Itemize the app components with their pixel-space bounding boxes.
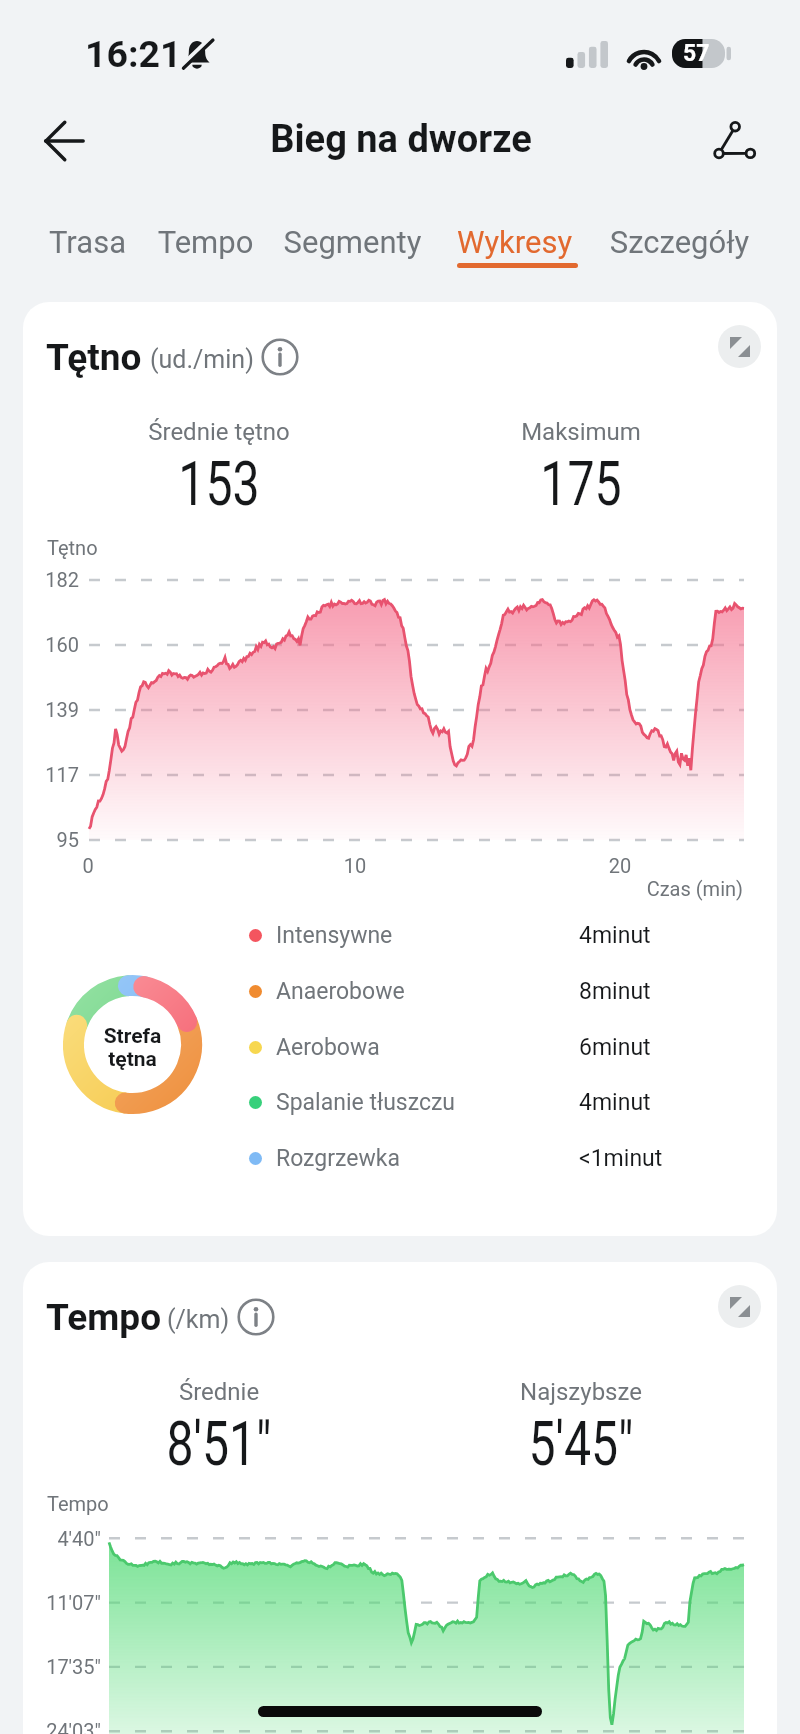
staticText: 16:21 [85,34,293,76]
button[interactable]: Intensywne [233,907,753,963]
staticText: Tempo [148,224,263,260]
staticText: tętna [63,1047,202,1072]
staticText: 11'07" [23,1591,101,1614]
staticText: (/km) [167,1305,407,1334]
button[interactable]: Expand chart [718,1285,761,1328]
staticText: 4'40" [23,1527,101,1550]
staticText: Tętno [47,536,247,559]
button[interactable]: Back [24,101,104,181]
staticText: Czas (min) [483,877,743,900]
button[interactable]: Trasa [38,208,137,280]
button[interactable]: Segmenty [270,208,435,280]
staticText: 10 [315,854,395,877]
button[interactable]: Aerobowa [233,1019,753,1075]
staticText: Segmenty [270,224,435,260]
button[interactable]: Share [681,100,761,180]
staticText: 57 [683,40,710,67]
button[interactable]: Anaerobowe [233,963,753,1019]
staticText: Rozgrzewka [276,1145,636,1172]
staticText: Średnie tętno [23,418,429,446]
staticText: Tętno [46,336,366,379]
staticText: 17'35" [23,1655,101,1678]
staticText: (ud./min) [150,345,390,374]
staticText: 8'51" [53,1408,385,1479]
staticText: 95 [23,828,79,851]
staticText: 8minut [579,978,777,1005]
button[interactable]: Wykresy [445,208,584,280]
staticText: Bieg na dworze [101,117,701,162]
staticText: 24'03" [23,1719,101,1734]
staticText: Tempo [47,1492,247,1515]
staticText: Strefa [63,1024,202,1049]
staticText: 153 [53,448,385,519]
staticText: Spalanie tłuszczu [276,1089,636,1116]
staticText: Trasa [38,224,137,260]
staticText: 0 [48,854,128,877]
staticText: 4minut [579,922,777,949]
staticText: Maksimum [371,418,777,446]
staticText: Najszybsze [371,1378,777,1406]
staticText: 5'45" [415,1408,747,1479]
staticText: Wykresy [445,224,584,260]
staticText: Średnie [23,1378,429,1406]
button[interactable]: Spalanie tłuszczu [233,1074,753,1130]
staticText: 182 [23,568,79,591]
button[interactable]: Tempo [148,208,263,280]
staticText: <1minut [579,1145,777,1172]
staticText: 117 [23,763,79,786]
button[interactable]: Szczegóły [596,208,763,280]
staticText: Aerobowa [276,1034,636,1061]
button[interactable]: Expand chart [718,325,761,368]
staticText: Szczegóły [596,224,763,260]
staticText: 175 [415,448,747,519]
staticText: 139 [23,698,79,721]
staticText: 160 [23,633,79,656]
button[interactable]: Rozgrzewka [233,1130,753,1186]
staticText: 6minut [579,1034,777,1061]
staticText: Anaerobowe [276,978,636,1005]
staticText: 20 [580,854,660,877]
staticText: Intensywne [276,922,636,949]
staticText: Tempo [46,1296,366,1339]
staticText: 4minut [579,1089,777,1116]
